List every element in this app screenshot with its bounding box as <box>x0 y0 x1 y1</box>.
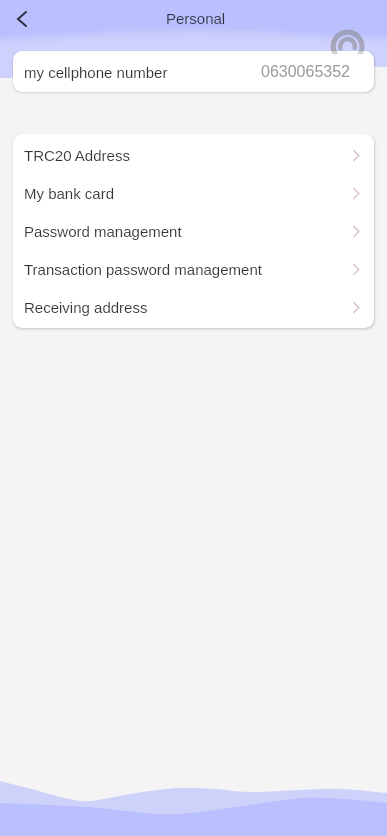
staticText: Password management <box>24 223 182 240</box>
staticText: TRC20 Address <box>24 147 130 164</box>
staticText: Transaction password management <box>24 261 262 278</box>
button[interactable]: my cellphone number <box>13 51 374 92</box>
button[interactable]: TRC20 Address <box>13 136 374 174</box>
button[interactable]: Transaction password management <box>13 250 374 288</box>
button[interactable]: Receiving address <box>13 288 374 326</box>
staticText: My bank card <box>24 185 115 202</box>
staticText: Personal <box>166 10 226 27</box>
button[interactable]: Password management <box>13 212 374 250</box>
button[interactable]: Back <box>5 2 39 36</box>
staticText: my cellphone number <box>24 64 168 81</box>
staticText: Receiving address <box>24 299 148 316</box>
button[interactable]: My bank card <box>13 174 374 212</box>
staticText: 0630065352 <box>261 63 350 81</box>
